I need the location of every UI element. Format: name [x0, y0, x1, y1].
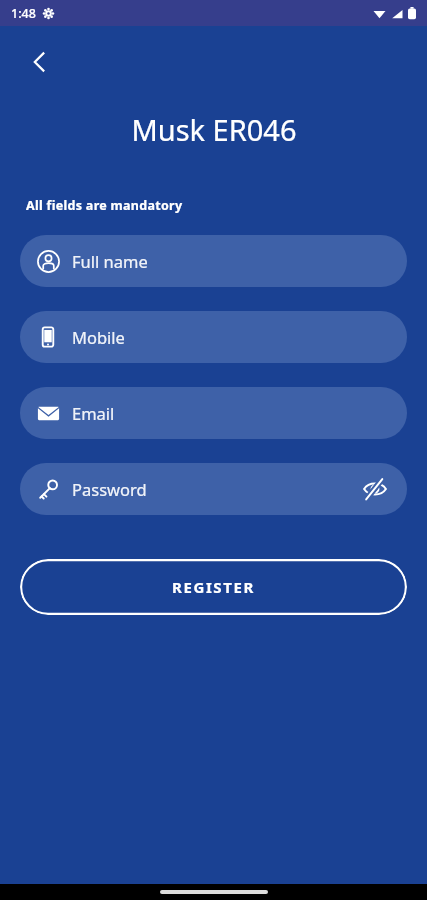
- button[interactable]: Show password: [361, 475, 389, 503]
- button[interactable]: Mobile: [20, 311, 407, 363]
- staticText: Password: [72, 478, 147, 500]
- staticText: Full name: [72, 250, 148, 272]
- button[interactable]: Password: [20, 463, 407, 515]
- staticText: Email: [72, 402, 115, 424]
- button[interactable]: Email: [20, 387, 407, 439]
- button[interactable]: Full name: [20, 235, 407, 287]
- staticText: 1:48: [11, 5, 36, 22]
- staticText: All fields are mandatory: [26, 197, 183, 214]
- staticText: Musk ER046: [131, 110, 297, 149]
- button[interactable]: REGISTER: [20, 559, 407, 615]
- staticText: Mobile: [72, 326, 125, 348]
- button[interactable]: Back: [14, 36, 66, 88]
- staticText: REGISTER: [172, 577, 255, 597]
